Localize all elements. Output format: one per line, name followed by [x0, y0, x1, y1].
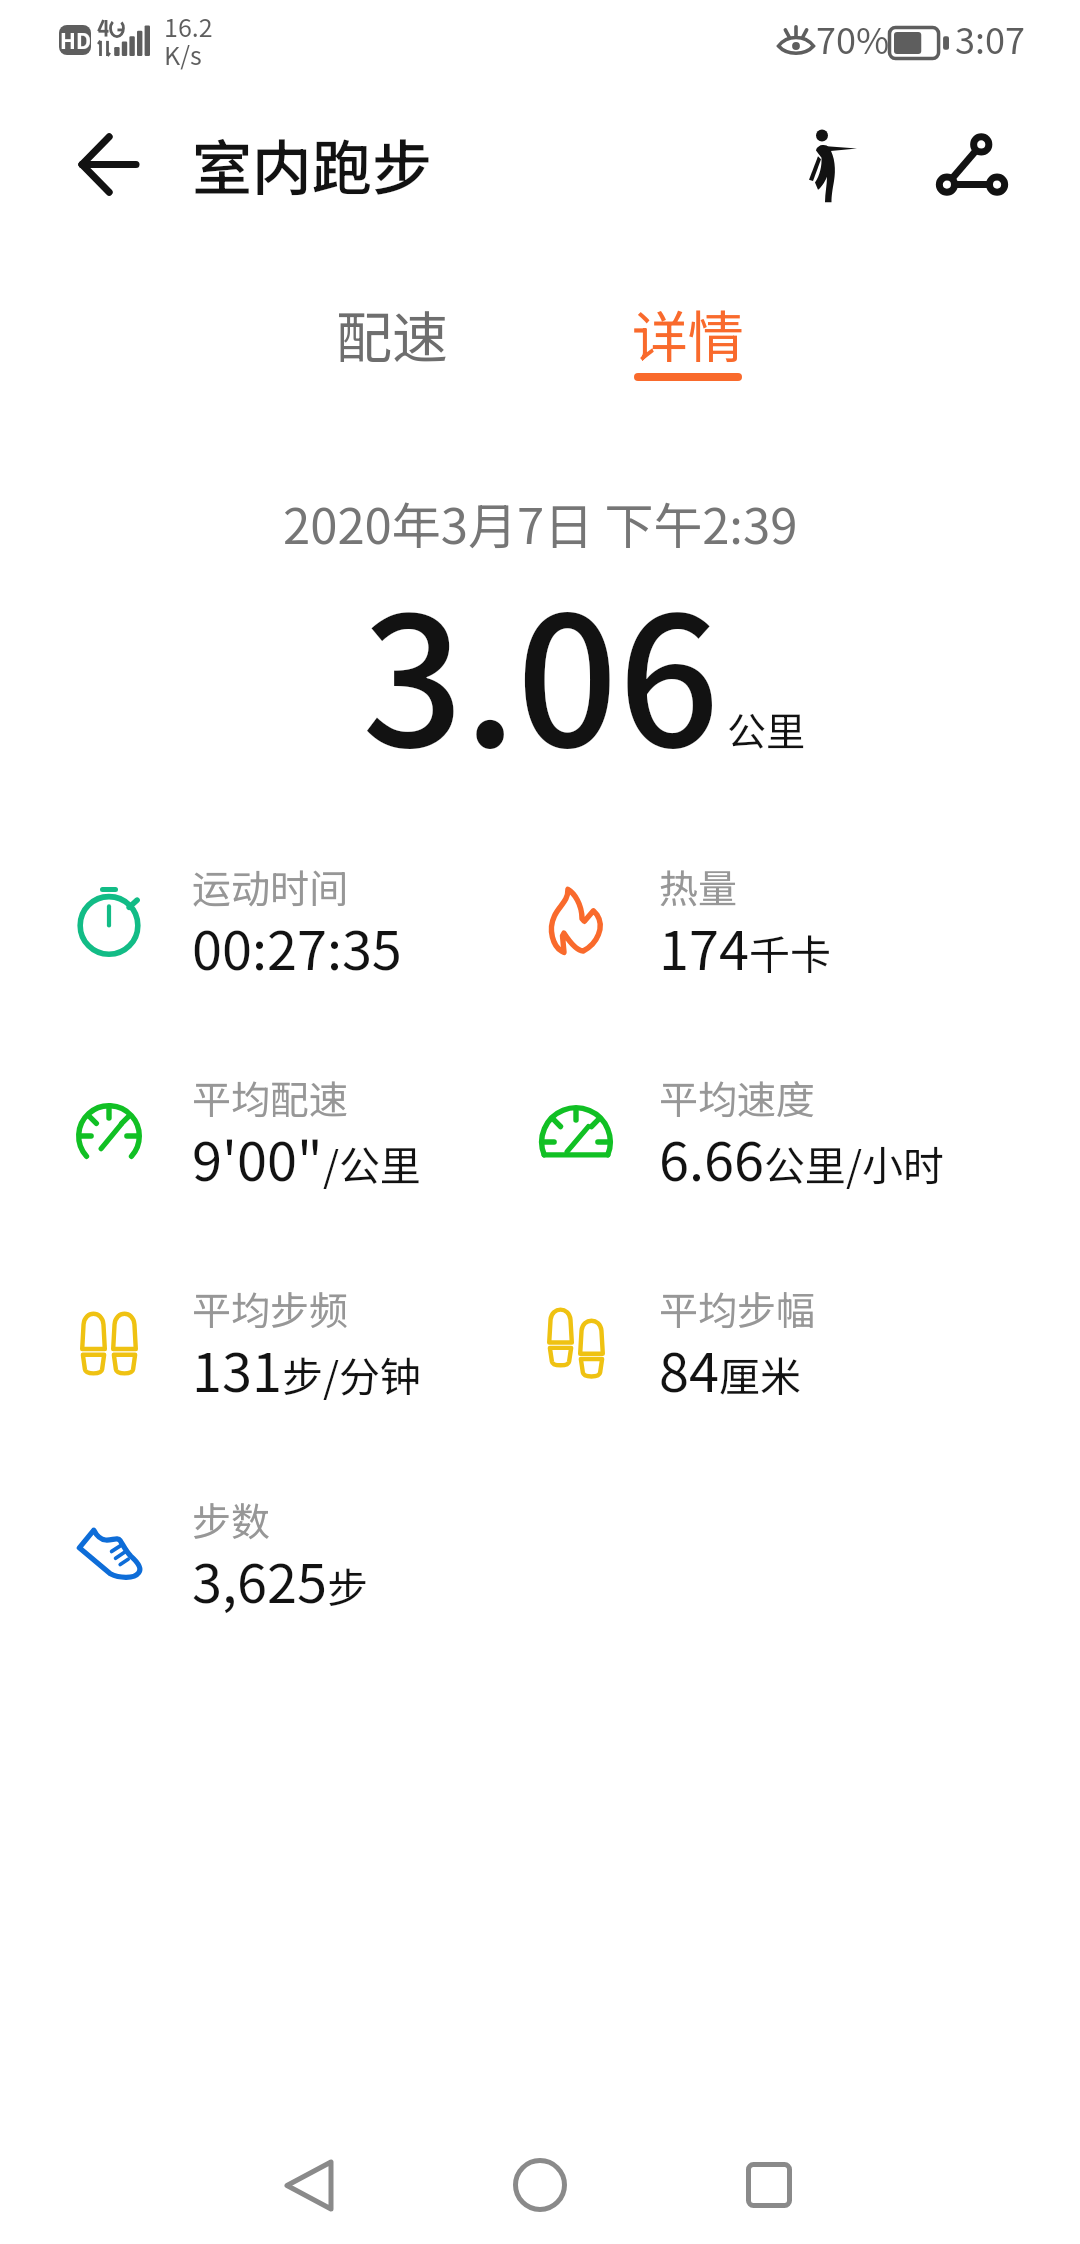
staticText: 千卡 [749, 922, 831, 981]
button[interactable]: Activity type [778, 112, 886, 220]
staticText: 平均配速 [192, 1069, 349, 1125]
button[interactable]: 详情 [543, 277, 833, 397]
staticText: 3.06 [362, 541, 720, 799]
staticText: 16.2 [164, 8, 213, 44]
staticText: 平均步幅 [659, 1280, 816, 1336]
staticText: HD [60, 25, 91, 55]
staticText: 84 [659, 1329, 719, 1407]
staticText: 3:07 [955, 12, 1025, 64]
staticText: 运动时间 [192, 858, 349, 914]
staticText: 174 [659, 907, 749, 985]
staticText: 配速 [336, 293, 448, 374]
staticText: 9'00" [192, 1118, 323, 1196]
button[interactable]: Back [234, 2120, 384, 2244]
staticText: 3,625 [192, 1540, 327, 1618]
staticText: 公里/小时 [764, 1133, 945, 1192]
staticText: 步/分钟 [282, 1344, 422, 1403]
staticText: 131 [192, 1329, 282, 1407]
staticText: 详情 [632, 293, 744, 374]
staticText: 步数 [192, 1491, 271, 1547]
staticText: K/s [164, 36, 202, 72]
staticText: 00:27:35 [192, 907, 402, 985]
staticText: 平均速度 [659, 1069, 816, 1125]
staticText: 6.66 [659, 1118, 764, 1196]
button[interactable]: Home [465, 2120, 615, 2244]
staticText: 70% [816, 12, 890, 64]
button[interactable]: Back [48, 114, 168, 214]
staticText: 2020年3月7日 下午2:39 [283, 487, 798, 558]
staticText: 步 [327, 1555, 368, 1614]
staticText: 热量 [659, 858, 738, 914]
button[interactable]: Recent apps [694, 2120, 844, 2244]
staticText: 厘米 [719, 1344, 801, 1403]
button[interactable]: 配速 [247, 277, 537, 397]
staticText: 公里 [727, 701, 806, 757]
button[interactable]: Share [918, 110, 1026, 218]
staticText: /公里 [323, 1133, 422, 1192]
staticText: 平均步频 [192, 1280, 349, 1336]
staticText: 室内跑步 [192, 120, 432, 207]
